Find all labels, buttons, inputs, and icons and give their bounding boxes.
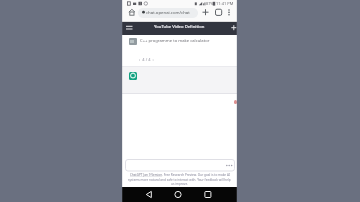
button[interactable] — [201, 8, 210, 18]
staticText: systems more natural and safe to interac… — [128, 178, 231, 182]
button[interactable] — [225, 8, 233, 18]
staticText: YouTube Video Definition — [154, 24, 205, 30]
staticText: C++ programme to make calculator — [140, 38, 210, 44]
button[interactable] — [127, 8, 137, 17]
button[interactable] — [214, 8, 223, 18]
button[interactable] — [126, 160, 235, 172]
staticText: 87% — [206, 1, 214, 6]
button[interactable] — [143, 189, 154, 200]
staticText: ‹ 4 / 4 › — [139, 57, 154, 62]
staticText: 11:41 PM — [216, 1, 234, 6]
button[interactable] — [138, 8, 198, 18]
staticText: ChatGPT Jan 9 Version. Free Research Pre… — [130, 173, 230, 177]
staticText: chat.openai.com/chat — [146, 9, 190, 15]
button[interactable] — [173, 189, 184, 200]
button[interactable] — [124, 23, 135, 34]
button[interactable] — [202, 189, 213, 200]
staticText: us improve. — [171, 182, 188, 186]
button[interactable] — [229, 23, 238, 34]
